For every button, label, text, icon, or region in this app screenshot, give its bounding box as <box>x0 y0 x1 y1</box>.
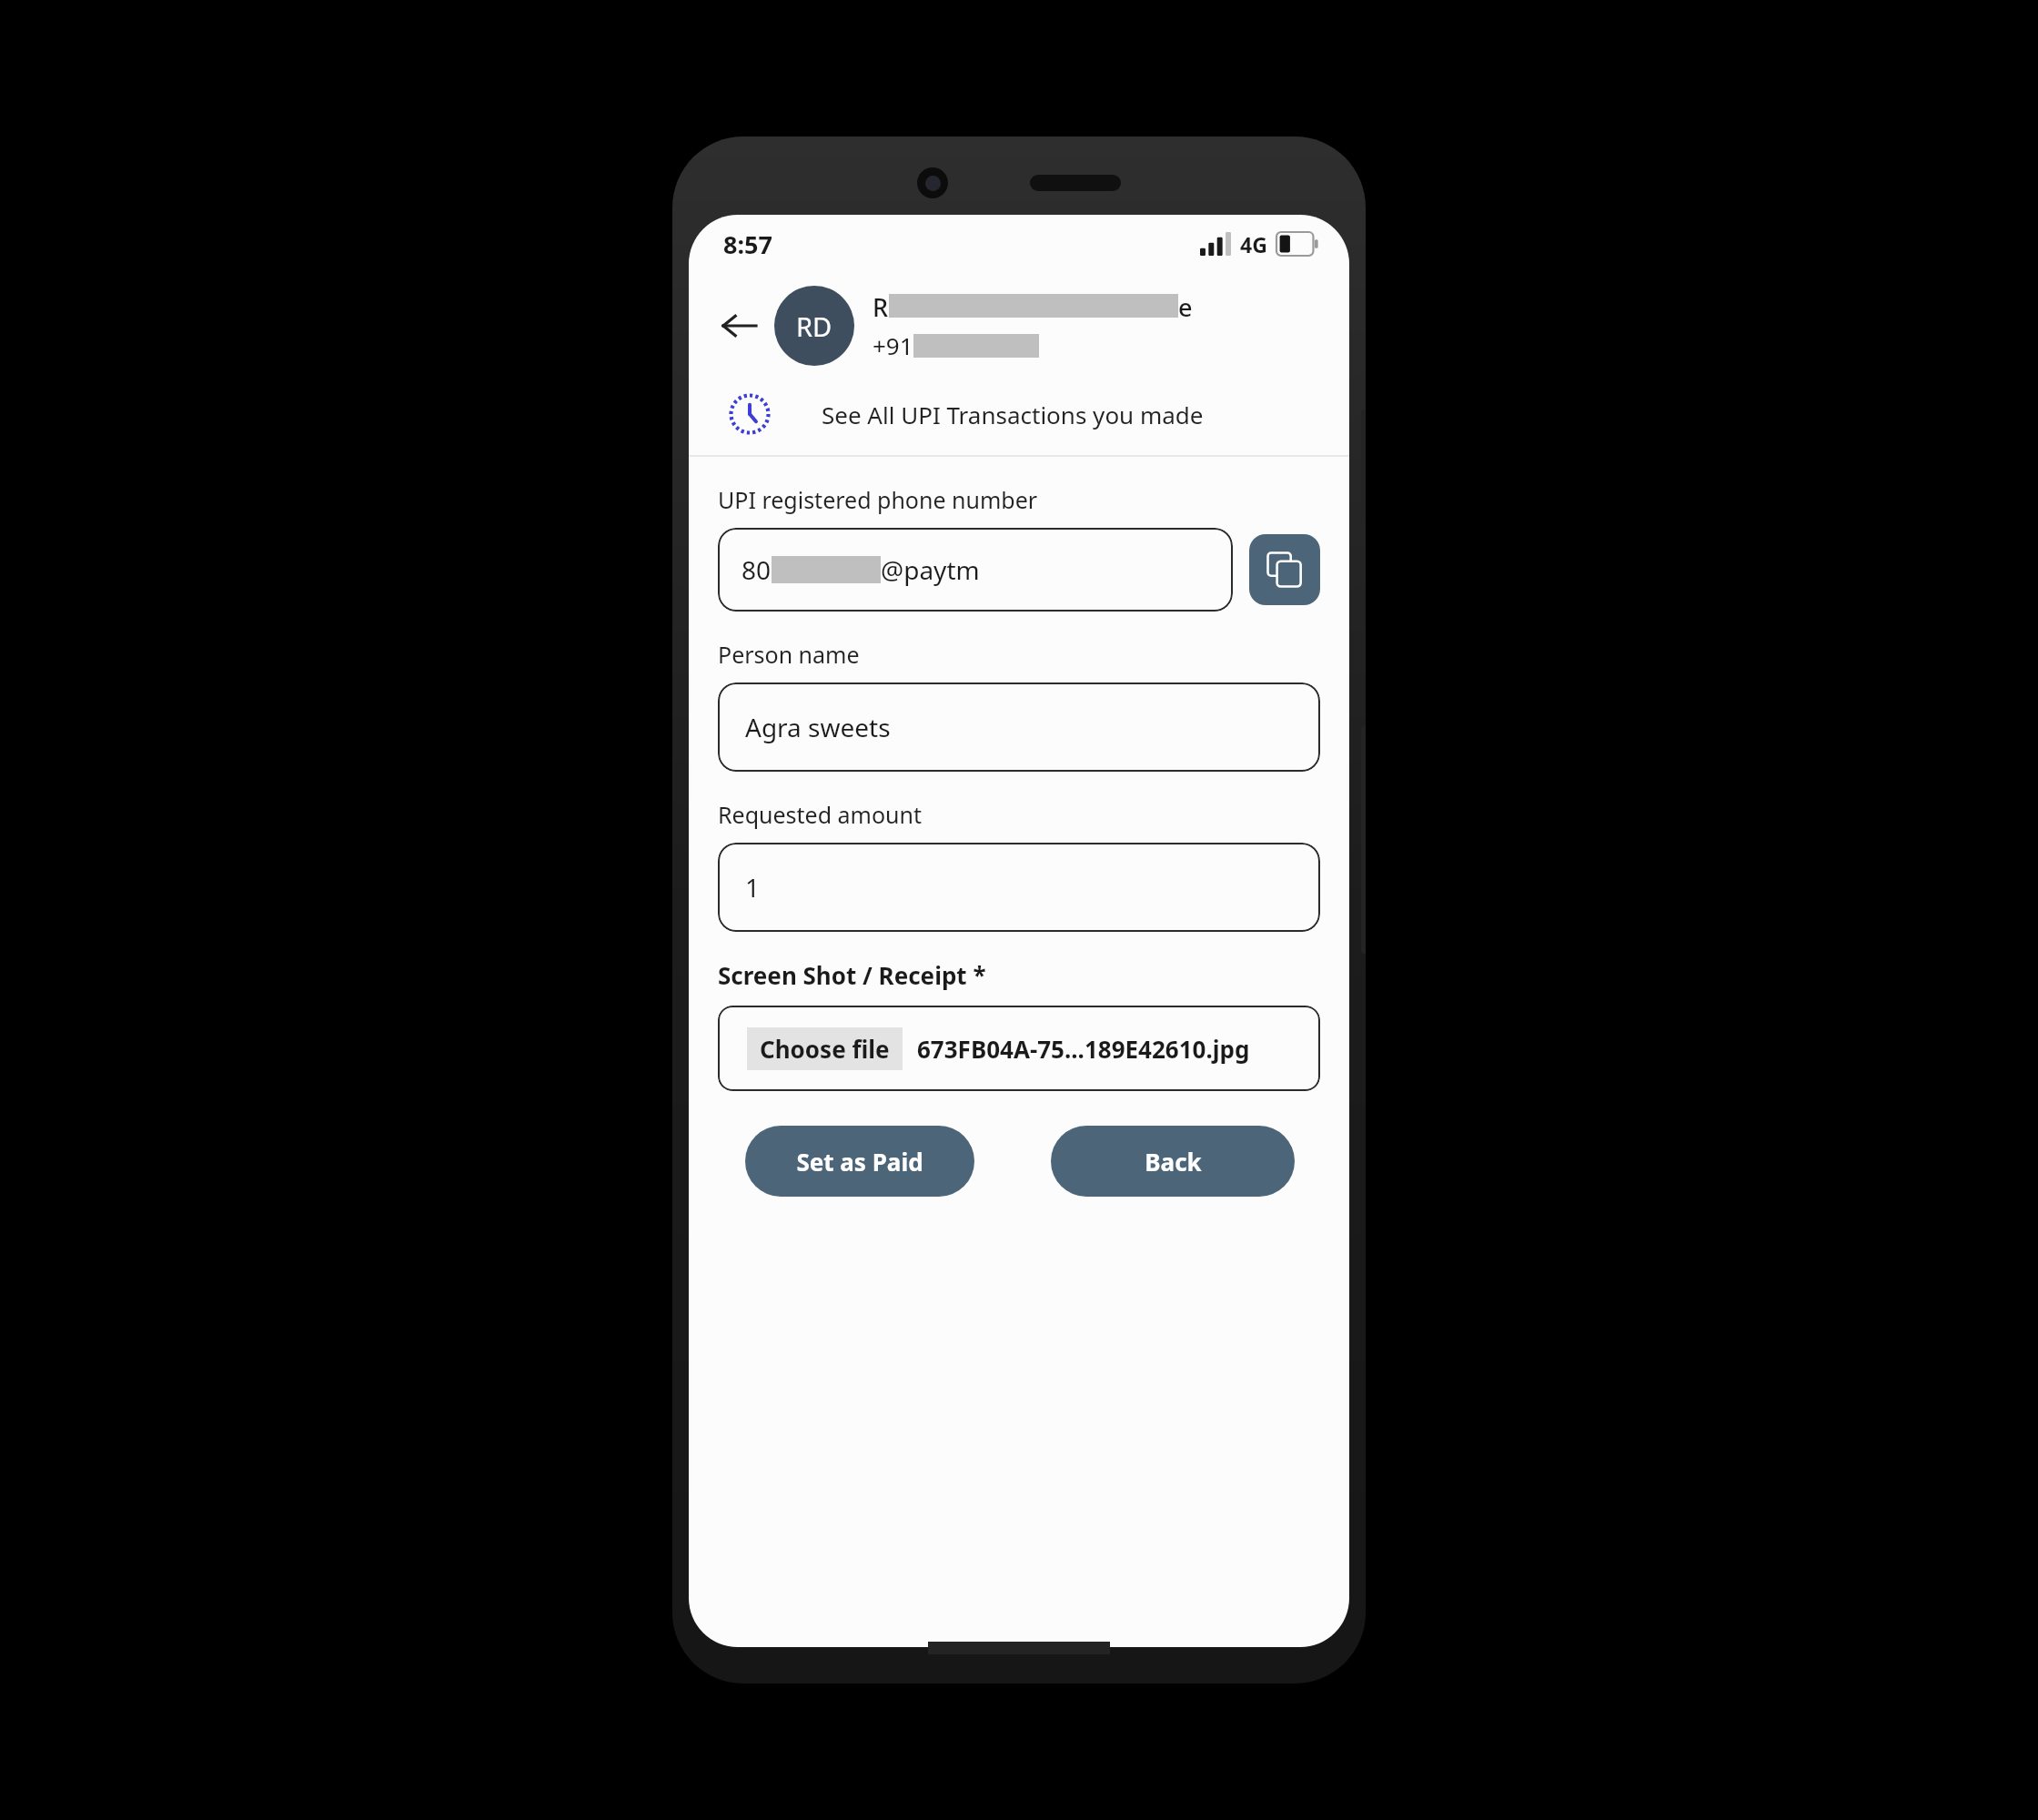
staticText: e <box>1178 290 1193 324</box>
staticText: +91 <box>873 329 913 361</box>
staticText: Back <box>1145 1146 1202 1178</box>
button[interactable]: Set as Paid <box>745 1126 974 1197</box>
staticText: 1 <box>745 870 761 905</box>
staticText: 673FB04A-75...189E42610.jpg <box>917 1033 1250 1065</box>
staticText: UPI registered phone number <box>718 484 1038 515</box>
button[interactable]: Back <box>1051 1126 1295 1197</box>
button[interactable]: Back <box>714 300 765 351</box>
staticText: Set as Paid <box>796 1146 923 1178</box>
staticText: R <box>873 290 889 324</box>
button[interactable]: RD <box>774 286 854 366</box>
staticText: See All UPI Transactions you made <box>822 399 1204 430</box>
staticText: Choose file <box>760 1033 890 1065</box>
staticText: Person name <box>718 639 860 670</box>
staticText: Requested amount <box>718 799 923 830</box>
staticText: 80 <box>742 552 772 587</box>
button[interactable]: 1 <box>718 843 1320 932</box>
button[interactable]: See All UPI Transactions you made <box>689 389 1349 455</box>
button[interactable]: Agra sweets <box>718 682 1320 772</box>
button[interactable]: Copy UPI ID <box>1249 534 1320 605</box>
button[interactable]: Choose file <box>718 1006 1320 1091</box>
staticText: @paytm <box>881 552 980 587</box>
staticText: Agra sweets <box>745 710 891 744</box>
staticText: Screen Shot / Receipt * <box>718 959 986 991</box>
staticText: RD <box>796 308 832 344</box>
button[interactable]: 80 <box>718 528 1233 612</box>
staticText: 4G <box>1240 230 1267 258</box>
staticText: 8:57 <box>723 227 772 261</box>
